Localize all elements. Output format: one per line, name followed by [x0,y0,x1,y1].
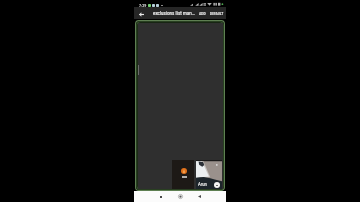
button[interactable]: ADD [198,10,207,16]
button[interactable]: Back [194,191,205,202]
button[interactable] [172,160,194,189]
button[interactable]: Arun [196,160,222,189]
button[interactable]: More options [214,182,220,188]
staticText: ADD [199,11,206,15]
button[interactable]: Recents [155,191,166,202]
button[interactable]: Back [136,7,147,19]
staticText: DEFAULT [210,11,224,15]
button[interactable]: DEFAULT [209,10,225,16]
staticText: exclusions list man… [153,10,195,16]
staticText: 7:29 [139,3,147,7]
staticText: Arun [198,182,207,188]
button[interactable]: Home [175,191,186,202]
